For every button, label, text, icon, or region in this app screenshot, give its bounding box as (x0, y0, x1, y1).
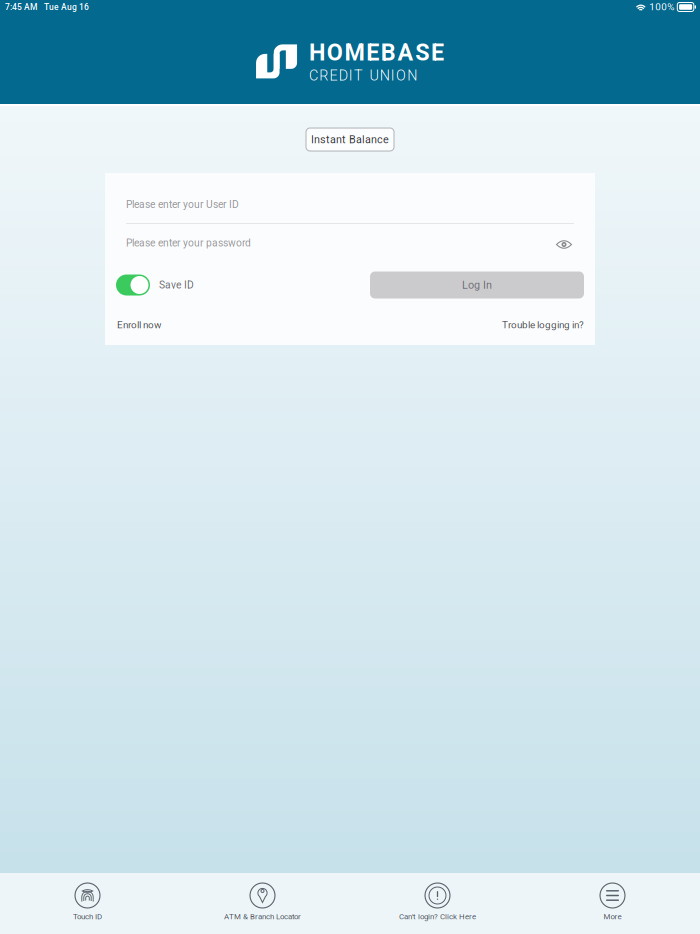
staticText: Save ID (159, 279, 194, 291)
button[interactable]: More (525, 873, 700, 934)
button[interactable]: Touch ID (0, 873, 175, 934)
staticText: A (398, 39, 414, 66)
staticText: E (431, 39, 444, 66)
staticText: I (391, 67, 395, 84)
staticText: S (415, 39, 429, 66)
staticText: N (380, 67, 390, 84)
staticText: More (603, 912, 621, 921)
staticText: U (369, 67, 378, 84)
staticText: Touch ID (73, 912, 102, 921)
button[interactable]: Can't login? Click Here (350, 873, 525, 934)
staticText: 7:45 AM (5, 2, 37, 12)
staticText: O (327, 39, 343, 66)
staticText: Please enter your User ID (126, 198, 239, 210)
staticText: E (329, 67, 337, 84)
staticText: Can't login? Click Here (399, 912, 476, 921)
button[interactable]: Show password (554, 234, 574, 254)
staticText: T (354, 67, 363, 84)
button[interactable]: Instant Balance (306, 128, 394, 151)
button[interactable]: Save ID (105, 274, 194, 295)
button[interactable]: Trouble logging in? (502, 319, 595, 331)
staticText: O (396, 67, 406, 84)
staticText: D (339, 67, 348, 84)
button[interactable]: Enroll now (105, 319, 161, 331)
staticText: Trouble logging in? (502, 319, 584, 331)
staticText: ATM & Branch Locator (224, 912, 301, 921)
button[interactable]: ATM & Branch Locator (175, 873, 350, 934)
staticText: M (344, 39, 364, 66)
staticText: Tue Aug 16 (44, 2, 89, 12)
staticText: E (366, 39, 379, 66)
staticText: Log In (462, 279, 492, 291)
staticText: B (381, 39, 396, 66)
staticText: Enroll now (117, 319, 161, 331)
staticText: H (309, 39, 325, 66)
staticText: R (319, 67, 328, 84)
staticText: Instant Balance (311, 133, 389, 146)
button[interactable]: Log In (370, 271, 595, 298)
staticText: Please enter your password (126, 237, 251, 249)
staticText: N (407, 67, 417, 84)
staticText: I (349, 67, 353, 84)
staticText: C (309, 67, 318, 84)
staticText: 100% (649, 1, 674, 13)
